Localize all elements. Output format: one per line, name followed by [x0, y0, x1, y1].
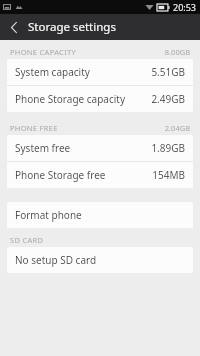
staticText: Storage settings — [28, 19, 116, 35]
staticText: 5.51GB — [151, 65, 185, 79]
staticText: 8.00GB — [164, 47, 190, 57]
staticText: Phone Storage capacity — [15, 92, 126, 106]
button[interactable]: Format phone — [7, 202, 193, 228]
button[interactable]: No setup SD card — [7, 247, 193, 273]
button[interactable]: Phone Storage free — [7, 162, 193, 188]
staticText: 2.49GB — [151, 92, 185, 106]
button[interactable]: System capacity — [7, 59, 193, 85]
staticText: 1.89GB — [151, 141, 185, 155]
button[interactable]: Phone Storage capacity — [7, 86, 193, 112]
button[interactable]: System free — [7, 135, 193, 161]
button[interactable]: Back — [0, 14, 28, 40]
staticText: System free — [15, 141, 71, 155]
staticText: PHONE CAPACITY — [10, 47, 77, 57]
staticText: System capacity — [15, 65, 90, 79]
staticText: SD CARD — [10, 235, 44, 245]
staticText: No setup SD card — [15, 253, 97, 267]
staticText: 20:53 — [173, 1, 197, 13]
staticText: Phone Storage free — [15, 168, 106, 182]
staticText: 154MB — [152, 168, 185, 182]
staticText: Format phone — [15, 208, 82, 222]
staticText: 2.04GB — [164, 123, 190, 133]
staticText: PHONE FREE — [10, 123, 58, 133]
